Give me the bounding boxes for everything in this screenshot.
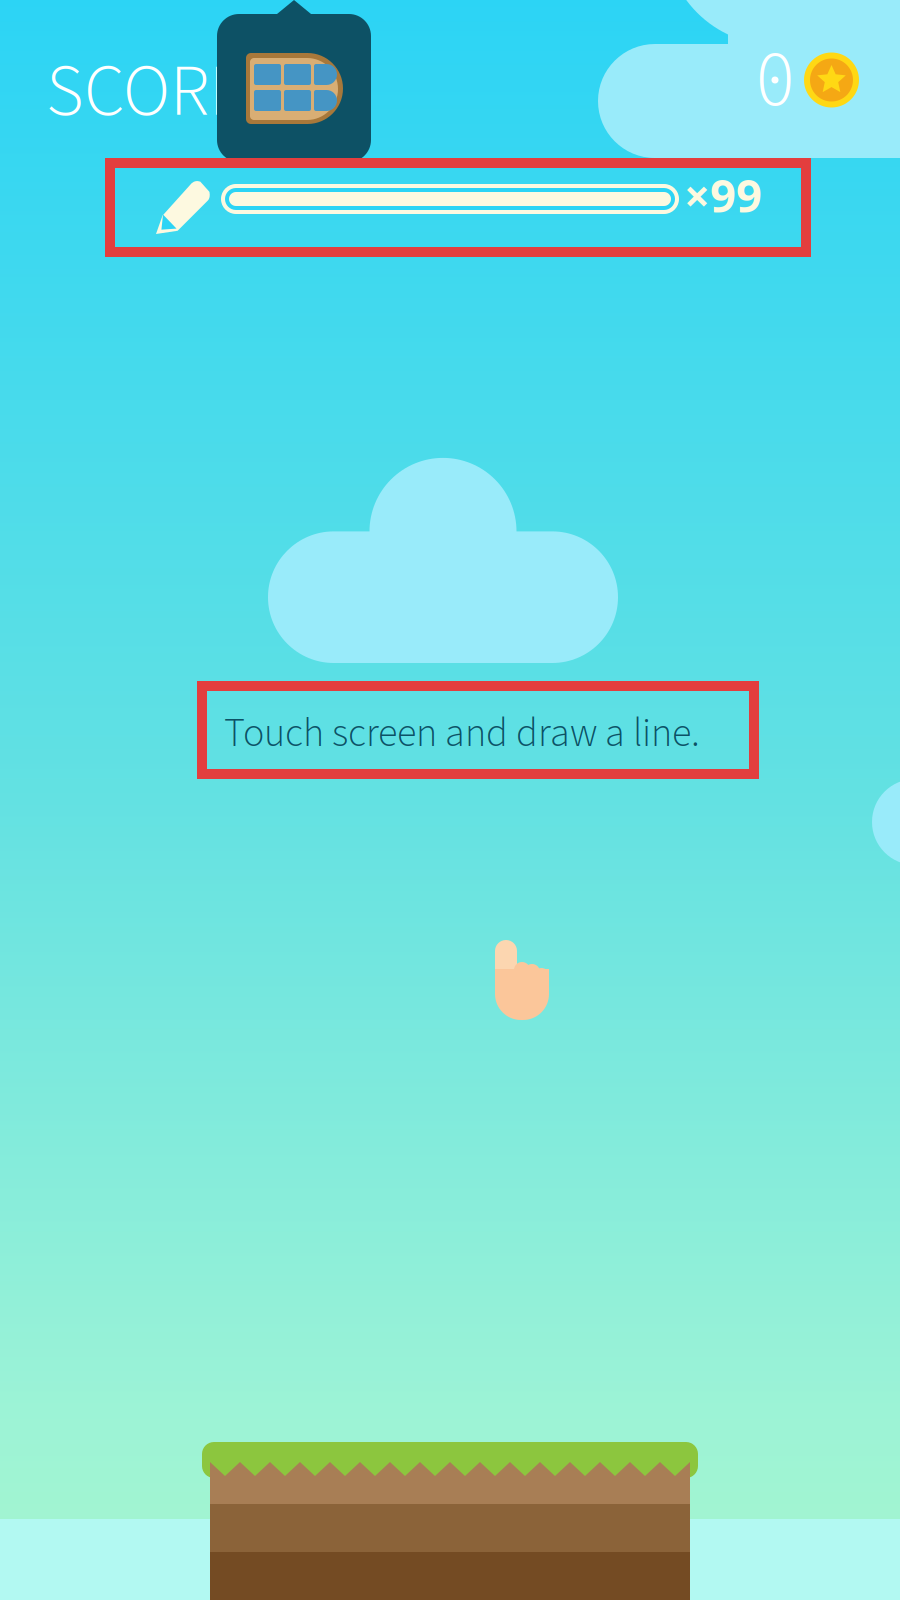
staticText: 0	[756, 23, 794, 137]
button[interactable]: Level goal	[217, 0, 371, 162]
button[interactable]: 0	[756, 47, 859, 113]
staticText: SCORE	[46, 41, 246, 143]
staticText: Touch screen and draw a line.	[224, 705, 700, 762]
staticText: ×99	[684, 164, 762, 226]
